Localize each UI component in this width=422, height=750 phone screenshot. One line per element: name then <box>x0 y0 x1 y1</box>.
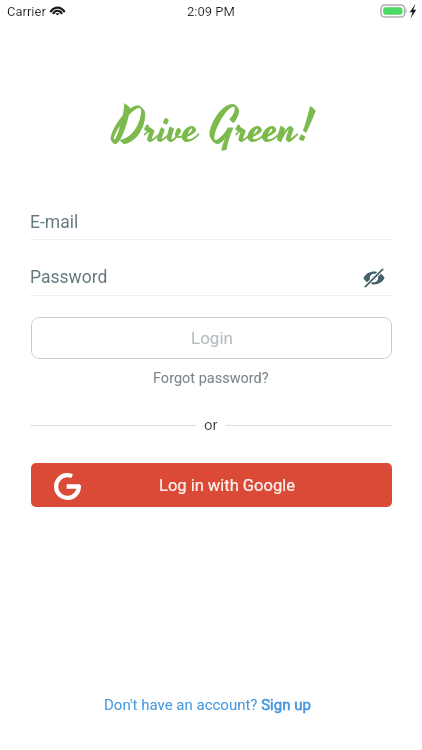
staticText: Carrier <box>7 4 46 19</box>
button[interactable]: Login <box>31 317 392 359</box>
staticText: or <box>204 416 218 434</box>
staticText: Login <box>191 328 233 348</box>
staticText: Password <box>30 267 108 288</box>
button[interactable]: Forgot password? <box>153 370 269 387</box>
button[interactable]: Show password <box>357 266 391 290</box>
button[interactable]: Don't have an account? Sign up <box>104 696 311 714</box>
button[interactable]: Log in with Google <box>31 463 392 507</box>
staticText: E-mail <box>30 212 79 233</box>
staticText: Forgot password? <box>153 370 269 387</box>
staticText: Log in with Google <box>159 476 295 495</box>
staticText: Drive Green! <box>113 95 314 162</box>
staticText: Don't have an account? Sign up <box>104 696 311 714</box>
staticText: 2:09 PM <box>187 4 235 19</box>
